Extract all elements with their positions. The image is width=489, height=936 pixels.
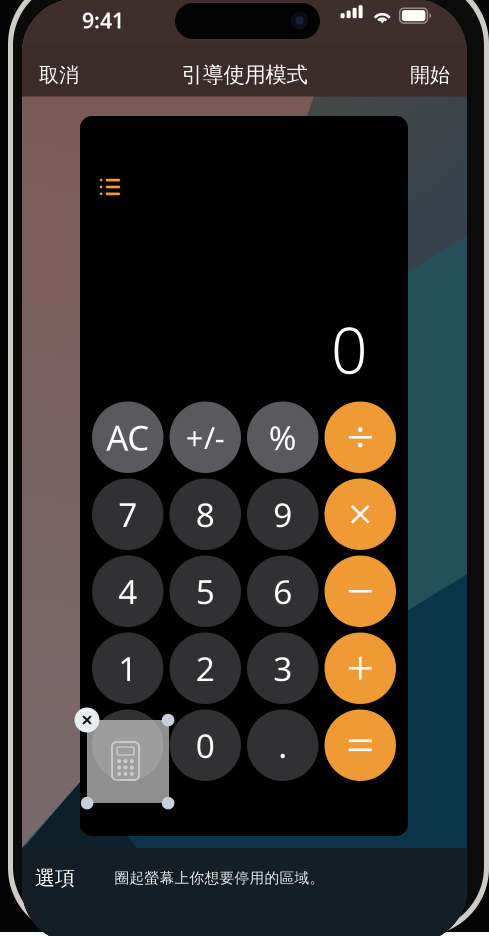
staticText: +/- xyxy=(186,417,225,458)
button[interactable]: . xyxy=(247,709,318,781)
staticText: 引導使用模式 xyxy=(181,62,307,88)
button[interactable]: Add xyxy=(324,632,396,704)
staticText: 1 xyxy=(118,646,137,690)
button[interactable]: 0 xyxy=(169,709,241,781)
button[interactable]: Divide xyxy=(324,401,396,473)
staticText: 9 xyxy=(273,492,292,536)
button[interactable]: 選項 xyxy=(35,864,95,892)
staticText: 取消 xyxy=(39,63,79,87)
button[interactable]: Equals xyxy=(324,709,396,781)
button[interactable]: 1 xyxy=(92,632,163,704)
staticText: 0 xyxy=(331,306,368,391)
button[interactable]: 取消 xyxy=(39,57,111,93)
button[interactable]: 2 xyxy=(169,632,241,704)
button[interactable]: 5 xyxy=(169,555,241,627)
staticText: 圈起螢幕上你想要停用的區域。 xyxy=(114,869,324,887)
staticText: 開始 xyxy=(410,63,450,87)
staticText: AC xyxy=(106,414,149,460)
button[interactable]: +/- xyxy=(169,401,241,473)
button[interactable]: 4 xyxy=(92,555,163,627)
button[interactable]: % xyxy=(247,401,318,473)
staticText: . xyxy=(278,723,287,767)
button[interactable]: Remove selected region xyxy=(74,707,99,732)
button[interactable]: AC xyxy=(92,401,163,473)
staticText: 5 xyxy=(196,569,215,613)
button[interactable]: 7 xyxy=(92,478,163,550)
button[interactable]: 3 xyxy=(247,632,318,704)
staticText: 7 xyxy=(118,492,137,536)
staticText: 3 xyxy=(273,646,292,690)
staticText: 0 xyxy=(196,723,215,767)
button[interactable]: 9 xyxy=(247,478,318,550)
button[interactable]: 8 xyxy=(169,478,241,550)
button[interactable]: History xyxy=(99,178,121,196)
staticText: 6 xyxy=(273,569,292,613)
staticText: 9:41 xyxy=(82,6,124,34)
button[interactable]: Subtract xyxy=(324,555,396,627)
button[interactable]: 開始 xyxy=(390,57,450,93)
button[interactable]: 6 xyxy=(247,555,318,627)
staticText: 4 xyxy=(118,569,137,613)
staticText: 選項 xyxy=(35,866,75,890)
staticText: % xyxy=(269,415,297,459)
button[interactable]: Multiply xyxy=(324,478,396,550)
button[interactable] xyxy=(92,709,163,781)
staticText: 8 xyxy=(196,492,215,536)
staticText: 2 xyxy=(196,646,215,690)
